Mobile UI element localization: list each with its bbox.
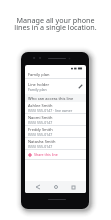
button[interactable]: Back bbox=[33, 182, 43, 192]
staticText: Naomi Smith bbox=[28, 115, 53, 120]
staticText: Family plan bbox=[28, 87, 47, 92]
staticText: (555) 555-0147 bbox=[28, 144, 53, 149]
other: Edit bbox=[78, 84, 83, 89]
staticText: Natasha Smith bbox=[28, 139, 56, 144]
button[interactable]: Freddy Smith bbox=[25, 126, 86, 137]
staticText: Family plan bbox=[28, 72, 50, 77]
staticText: Line holder bbox=[28, 82, 50, 87]
staticText: (555) 555-0147 bbox=[28, 132, 53, 137]
staticText: (555) 555-0147 · line owner bbox=[28, 108, 73, 113]
staticText: (555) 555-0147 bbox=[28, 120, 53, 125]
button[interactable]: Home bbox=[51, 182, 61, 192]
button[interactable]: Naomi Smith bbox=[25, 114, 86, 125]
staticText: Freddy Smith bbox=[28, 127, 53, 132]
button[interactable]: Ashlee Smith bbox=[25, 102, 86, 113]
button[interactable]: Line holder bbox=[25, 79, 86, 94]
staticText: Share this line bbox=[34, 152, 58, 157]
button[interactable]: Share this line bbox=[25, 150, 86, 159]
staticText: Manage all your phone lines in a single … bbox=[14, 15, 97, 32]
button[interactable]: Natasha Smith bbox=[25, 138, 86, 149]
button[interactable]: Recents bbox=[68, 182, 78, 192]
staticText: Who can access this line bbox=[28, 96, 74, 101]
staticText: Ashlee Smith bbox=[28, 103, 53, 108]
